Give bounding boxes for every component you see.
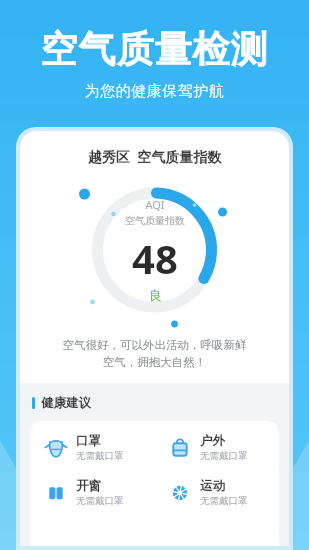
staticText: 无需戴口罩	[200, 495, 248, 507]
staticText: 空气质量指数	[125, 214, 185, 227]
staticText: 越秀区 空气质量指数	[20, 147, 289, 166]
staticText: 运动	[200, 478, 225, 494]
staticText: 空气质量检测	[0, 26, 309, 73]
staticText: 48	[132, 231, 178, 285]
button[interactable]: 口罩	[30, 433, 154, 462]
button[interactable]: 运动	[154, 478, 279, 507]
staticText: AQI	[145, 197, 165, 212]
other: 口罩	[44, 436, 68, 460]
staticText: 无需戴口罩	[76, 495, 124, 507]
staticText: 为您的健康保驾护航	[0, 82, 309, 101]
staticText: 良	[149, 287, 162, 303]
staticText: 开窗	[76, 478, 101, 494]
other: 户外	[168, 436, 192, 460]
staticText: 口罩	[76, 433, 101, 449]
button[interactable]: 开窗	[30, 478, 154, 507]
button[interactable]: 户外	[154, 433, 279, 462]
staticText: 空气很好，可以外出活动，呼吸新鲜 空气，拥抱大自然！	[42, 338, 267, 369]
staticText: 健康建议	[41, 395, 91, 411]
staticText: 户外	[200, 433, 225, 449]
other: 运动	[168, 481, 192, 505]
other: 开窗	[44, 481, 68, 505]
staticText: 无需戴口罩	[76, 450, 124, 462]
staticText: 无需戴口罩	[200, 450, 248, 462]
